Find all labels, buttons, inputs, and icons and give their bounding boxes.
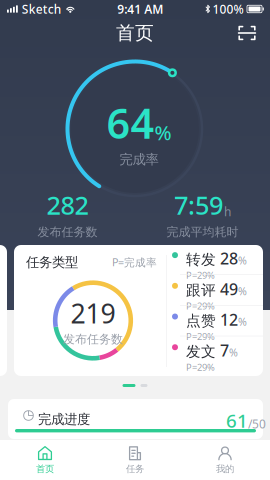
- staticText: 100%: [212, 1, 243, 17]
- staticText: 跟评: [186, 281, 216, 299]
- staticText: 49: [220, 278, 238, 299]
- staticText: 完成率: [119, 151, 158, 168]
- staticText: 282: [46, 188, 88, 222]
- staticText: P=29%: [186, 361, 215, 373]
- button[interactable]: 首页: [0, 440, 90, 480]
- staticText: 任务: [126, 463, 144, 475]
- staticText: P=完成率: [112, 255, 157, 269]
- staticText: 完成平均耗时: [166, 225, 238, 239]
- staticText: %: [229, 345, 238, 359]
- staticText: %: [238, 284, 247, 298]
- staticText: 任务类型: [26, 254, 78, 270]
- staticText: 9:41 AM: [117, 1, 163, 17]
- staticText: P=29%: [186, 330, 215, 343]
- staticText: 7:59: [174, 188, 223, 222]
- button[interactable]: 发文: [172, 339, 263, 370]
- button[interactable]: 转发: [172, 247, 263, 278]
- staticText: 12: [220, 309, 238, 330]
- staticText: 61: [226, 408, 248, 433]
- staticText: P=29%: [186, 269, 215, 281]
- staticText: 首页: [116, 21, 154, 44]
- staticText: 点赞: [186, 312, 216, 330]
- staticText: 64: [106, 95, 154, 150]
- staticText: %: [238, 315, 247, 329]
- staticText: 发文: [186, 343, 216, 361]
- staticText: 发布任务数: [63, 332, 123, 346]
- staticText: 完成进度: [38, 411, 90, 427]
- staticText: 28: [220, 248, 238, 269]
- staticText: %: [238, 253, 247, 267]
- staticText: h: [224, 204, 231, 220]
- staticText: 219: [70, 295, 115, 331]
- button[interactable]: 扫一扫: [232, 18, 262, 48]
- button[interactable]: 跟评: [172, 278, 263, 308]
- staticText: 发布任务数: [37, 225, 97, 239]
- staticText: 7: [220, 340, 229, 361]
- staticText: 首页: [36, 463, 54, 475]
- button[interactable]: 任务: [90, 440, 180, 480]
- staticText: P=29%: [186, 300, 215, 312]
- button[interactable]: 点赞: [172, 308, 263, 339]
- staticText: 我的: [216, 463, 234, 475]
- staticText: Sketch: [22, 1, 62, 17]
- staticText: /50: [248, 416, 266, 432]
- staticText: 转发: [186, 251, 216, 269]
- button[interactable]: 我的: [180, 440, 270, 480]
- staticText: %: [154, 119, 171, 146]
